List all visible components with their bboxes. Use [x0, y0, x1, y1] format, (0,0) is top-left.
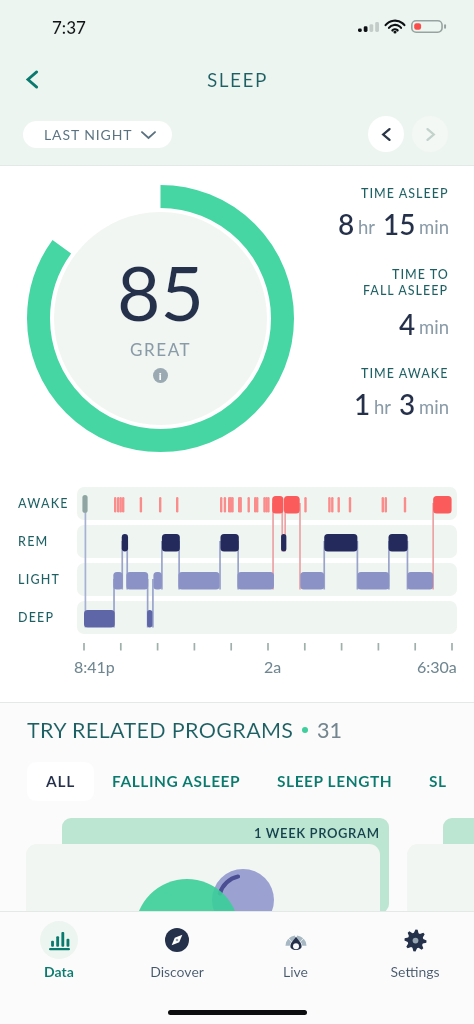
staticText: FALL ASLEEP [363, 283, 449, 298]
staticText: 85 [117, 247, 204, 337]
staticText: 4 [399, 307, 416, 341]
button[interactable]: SLEEP QUALITY [411, 762, 474, 801]
staticText: 7:37 [52, 17, 86, 37]
staticText: LIGHT [18, 572, 61, 587]
staticText: 1 [354, 387, 371, 421]
staticText: SLEEP [207, 68, 268, 91]
staticText: GREAT [130, 339, 192, 359]
button[interactable]: Settings [355, 912, 474, 992]
button[interactable] [407, 844, 474, 939]
staticText: Discover [150, 963, 204, 980]
staticText: FALLING ASLEEP [112, 772, 241, 791]
staticText: min [419, 216, 449, 238]
button[interactable]: Next night [412, 116, 448, 152]
staticText: 8:41p [74, 657, 115, 676]
staticText: hr [374, 396, 392, 418]
button[interactable] [26, 844, 380, 939]
staticText: REM [18, 534, 49, 549]
button[interactable]: LAST NIGHT [23, 121, 172, 148]
staticText: i [159, 370, 162, 382]
staticText: ALL [46, 772, 75, 791]
staticText: 6:30a [417, 657, 457, 676]
button[interactable]: Score info [153, 368, 168, 383]
button[interactable]: Back [10, 57, 54, 101]
staticText: LAST NIGHT [44, 126, 133, 143]
staticText: 8 [338, 207, 355, 241]
button[interactable]: ALL [27, 762, 94, 801]
staticText: min [419, 396, 449, 418]
staticText: 31 [317, 717, 342, 743]
button[interactable]: Discover [118, 912, 236, 992]
staticText: 2a [264, 657, 282, 676]
staticText: Data [44, 963, 74, 980]
staticText: AWAKE [18, 496, 69, 511]
staticText: SLEEP QUALITY [429, 772, 456, 791]
button[interactable]: Live [236, 912, 355, 992]
staticText: min [419, 316, 449, 338]
staticText: Live [283, 963, 308, 980]
staticText: DEEP [18, 610, 55, 625]
button[interactable]: Data [0, 912, 118, 992]
staticText: TRY RELATED PROGRAMS [27, 717, 294, 743]
staticText: TIME AWAKE [361, 366, 449, 381]
staticText: hr [358, 216, 376, 238]
staticText: SLEEP LENGTH [277, 772, 393, 791]
staticText: 3 [399, 387, 416, 421]
staticText: TIME ASLEEP [361, 186, 449, 201]
staticText: TIME TO [392, 267, 449, 282]
button[interactable]: Previous night [368, 116, 404, 152]
staticText: 1 WEEK PROGRAM [254, 825, 380, 841]
button[interactable]: FALLING ASLEEP [94, 762, 259, 801]
staticText: Settings [390, 963, 440, 980]
button[interactable]: SLEEP LENGTH [259, 762, 411, 801]
staticText: 15 [383, 207, 416, 241]
